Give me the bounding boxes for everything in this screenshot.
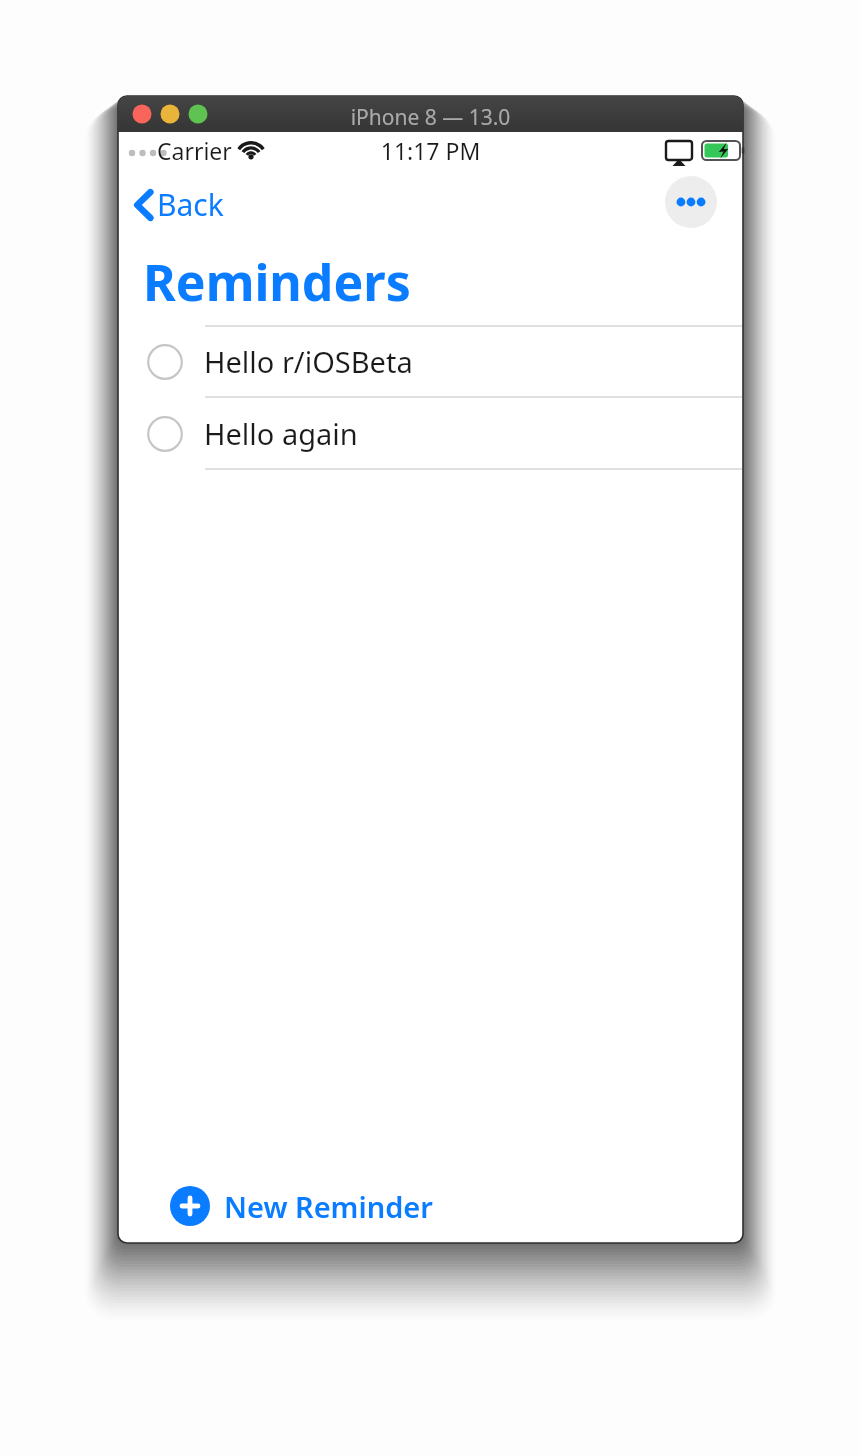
staticText: Hello again bbox=[204, 414, 358, 453]
staticText: New Reminder bbox=[224, 1187, 433, 1226]
staticText: Hello r/iOSBeta bbox=[204, 342, 413, 381]
button[interactable]: More options bbox=[665, 176, 717, 228]
staticText: iPhone 8 — 13.0 bbox=[118, 103, 743, 132]
staticText: Carrier bbox=[157, 135, 232, 166]
button[interactable]: Back bbox=[130, 180, 228, 229]
staticText: Back bbox=[157, 184, 224, 225]
button[interactable]: Hello r/iOSBeta bbox=[118, 326, 743, 397]
button[interactable]: Hello again bbox=[118, 398, 743, 469]
button[interactable]: New Reminder bbox=[164, 1180, 439, 1232]
staticText: 11:17 PM bbox=[118, 135, 743, 166]
staticText: Reminders bbox=[143, 248, 411, 316]
